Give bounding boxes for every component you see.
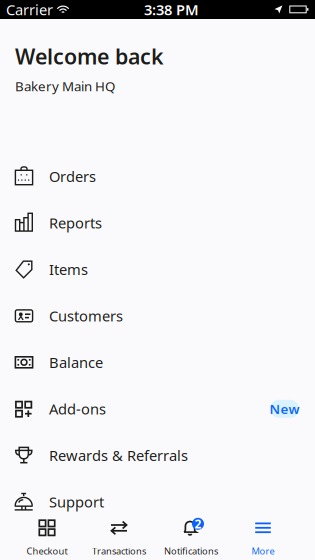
button[interactable]: Orders — [0, 153, 315, 199]
staticText: 2 — [194, 516, 201, 532]
button[interactable]: Customers — [0, 292, 315, 339]
staticText: Checkout — [26, 545, 67, 557]
staticText: Notifications — [164, 545, 218, 557]
staticText: 3:38 PM — [144, 0, 199, 19]
staticText: Transactions — [92, 545, 146, 557]
staticText: Add-ons — [49, 399, 106, 418]
staticText: Balance — [49, 352, 103, 372]
staticText: Bakery Main HQ — [15, 77, 115, 95]
button[interactable]: Balance — [0, 339, 315, 385]
staticText: Items — [49, 259, 88, 279]
staticText: Carrier — [6, 0, 53, 19]
staticText: Support — [49, 492, 104, 511]
staticText: Rewards & Referrals — [49, 445, 188, 465]
button[interactable]: More — [227, 517, 299, 557]
button[interactable]: Add-ons — [0, 385, 315, 432]
button[interactable]: Reports — [0, 199, 315, 246]
staticText: Customers — [49, 306, 123, 325]
button[interactable]: Checkout — [11, 517, 83, 557]
staticText: Reports — [49, 213, 102, 232]
button[interactable]: 2 — [155, 517, 227, 557]
staticText: Welcome back — [15, 42, 164, 70]
button[interactable]: Support — [0, 478, 315, 525]
button[interactable]: Items — [0, 246, 315, 292]
staticText: Orders — [49, 166, 96, 186]
button[interactable]: Rewards & Referrals — [0, 432, 315, 478]
button[interactable]: Transactions — [83, 517, 155, 557]
staticText: New — [269, 400, 299, 418]
staticText: More — [251, 545, 274, 557]
